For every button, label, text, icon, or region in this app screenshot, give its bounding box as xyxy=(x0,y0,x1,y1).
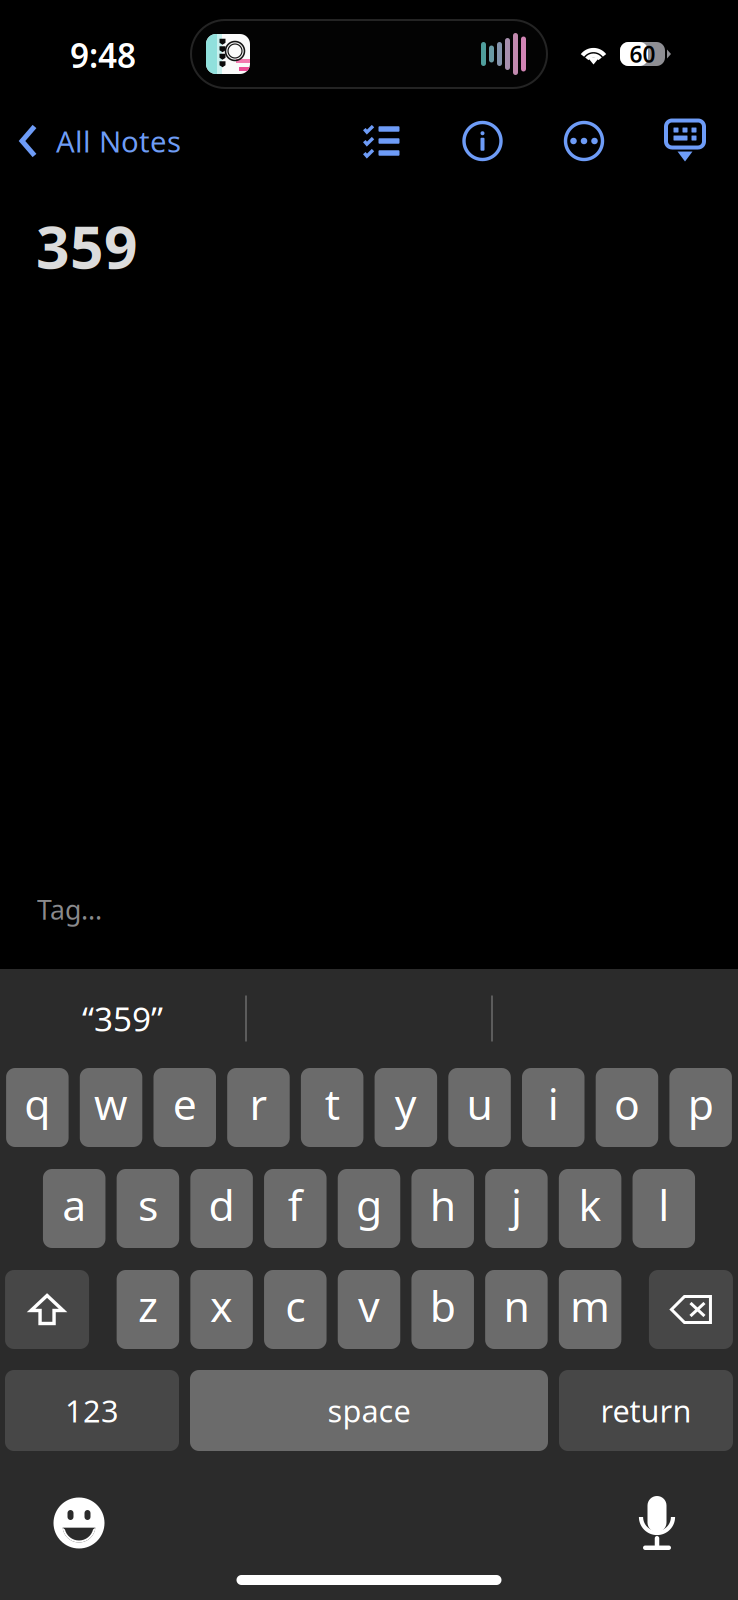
button[interactable]: Shift xyxy=(5,1270,89,1349)
staticText: p xyxy=(688,1075,714,1132)
button[interactable]: c xyxy=(264,1270,327,1349)
staticText: 60 xyxy=(629,39,655,69)
button[interactable]: u xyxy=(448,1068,511,1147)
button[interactable]: return xyxy=(559,1370,733,1451)
staticText: c xyxy=(285,1277,305,1334)
button[interactable]: o xyxy=(596,1068,658,1147)
button[interactable]: r xyxy=(227,1068,290,1147)
staticText: w xyxy=(94,1075,128,1132)
staticText: r xyxy=(249,1075,267,1132)
staticText: All Notes xyxy=(56,121,181,160)
button[interactable]: z xyxy=(117,1270,179,1349)
staticText: n xyxy=(503,1277,529,1334)
staticText: i xyxy=(548,1075,559,1132)
button[interactable]: v xyxy=(338,1270,400,1349)
button[interactable]: j xyxy=(485,1169,548,1248)
button[interactable]: d xyxy=(190,1169,253,1248)
staticText: k xyxy=(579,1176,602,1233)
staticText: l xyxy=(658,1176,669,1233)
staticText: Tag... xyxy=(37,892,102,927)
staticText: z xyxy=(138,1277,158,1334)
staticText: “359” xyxy=(82,996,163,1041)
staticText: return xyxy=(600,1390,691,1431)
staticText: d xyxy=(209,1176,235,1233)
button[interactable]: Info xyxy=(458,109,506,173)
button[interactable]: i xyxy=(522,1068,584,1147)
button[interactable]: n xyxy=(485,1270,548,1349)
button[interactable]: Delete xyxy=(649,1270,733,1349)
button[interactable]: p xyxy=(669,1068,732,1147)
staticText: a xyxy=(62,1176,86,1233)
button[interactable]: y xyxy=(375,1068,437,1147)
button[interactable]: Hide keyboard xyxy=(662,109,708,173)
button[interactable]: q xyxy=(6,1068,69,1147)
staticText: 359 xyxy=(36,207,138,285)
staticText: m xyxy=(570,1277,610,1334)
staticText: y xyxy=(395,1075,417,1132)
staticText: j xyxy=(511,1176,522,1233)
button[interactable]: k xyxy=(559,1169,621,1248)
staticText: x xyxy=(210,1277,233,1334)
staticText: space xyxy=(327,1390,410,1431)
staticText: q xyxy=(24,1075,50,1132)
button[interactable]: w xyxy=(80,1068,142,1147)
staticText: o xyxy=(614,1075,640,1132)
staticText: 123 xyxy=(65,1390,119,1431)
button[interactable]: x xyxy=(190,1270,253,1349)
button[interactable]: space xyxy=(190,1370,548,1451)
staticText: h xyxy=(430,1176,456,1233)
button[interactable]: e xyxy=(153,1068,216,1147)
staticText: v xyxy=(358,1277,380,1334)
staticText: s xyxy=(138,1176,158,1233)
staticText: t xyxy=(325,1075,340,1132)
button[interactable]: g xyxy=(338,1169,400,1248)
staticText: 9:48 xyxy=(70,33,136,77)
button[interactable]: t xyxy=(301,1068,363,1147)
button[interactable]: s xyxy=(117,1169,179,1248)
button[interactable]: l xyxy=(632,1169,695,1248)
staticText: f xyxy=(288,1176,303,1233)
staticText: u xyxy=(467,1075,493,1132)
button[interactable]: f xyxy=(264,1169,327,1248)
button[interactable]: All Notes xyxy=(0,109,181,173)
staticText: b xyxy=(430,1277,456,1334)
button[interactable]: b xyxy=(411,1270,474,1349)
staticText: e xyxy=(173,1075,197,1132)
button[interactable]: 123 xyxy=(5,1370,179,1451)
button[interactable]: m xyxy=(559,1270,621,1349)
staticText: g xyxy=(356,1176,382,1233)
button[interactable]: More options xyxy=(560,109,608,173)
button[interactable]: h xyxy=(411,1169,474,1248)
button[interactable]: a xyxy=(43,1169,105,1248)
button[interactable]: Checklist xyxy=(355,109,407,173)
button[interactable]: Emoji xyxy=(42,1492,116,1554)
button[interactable]: Dictation xyxy=(620,1492,694,1554)
